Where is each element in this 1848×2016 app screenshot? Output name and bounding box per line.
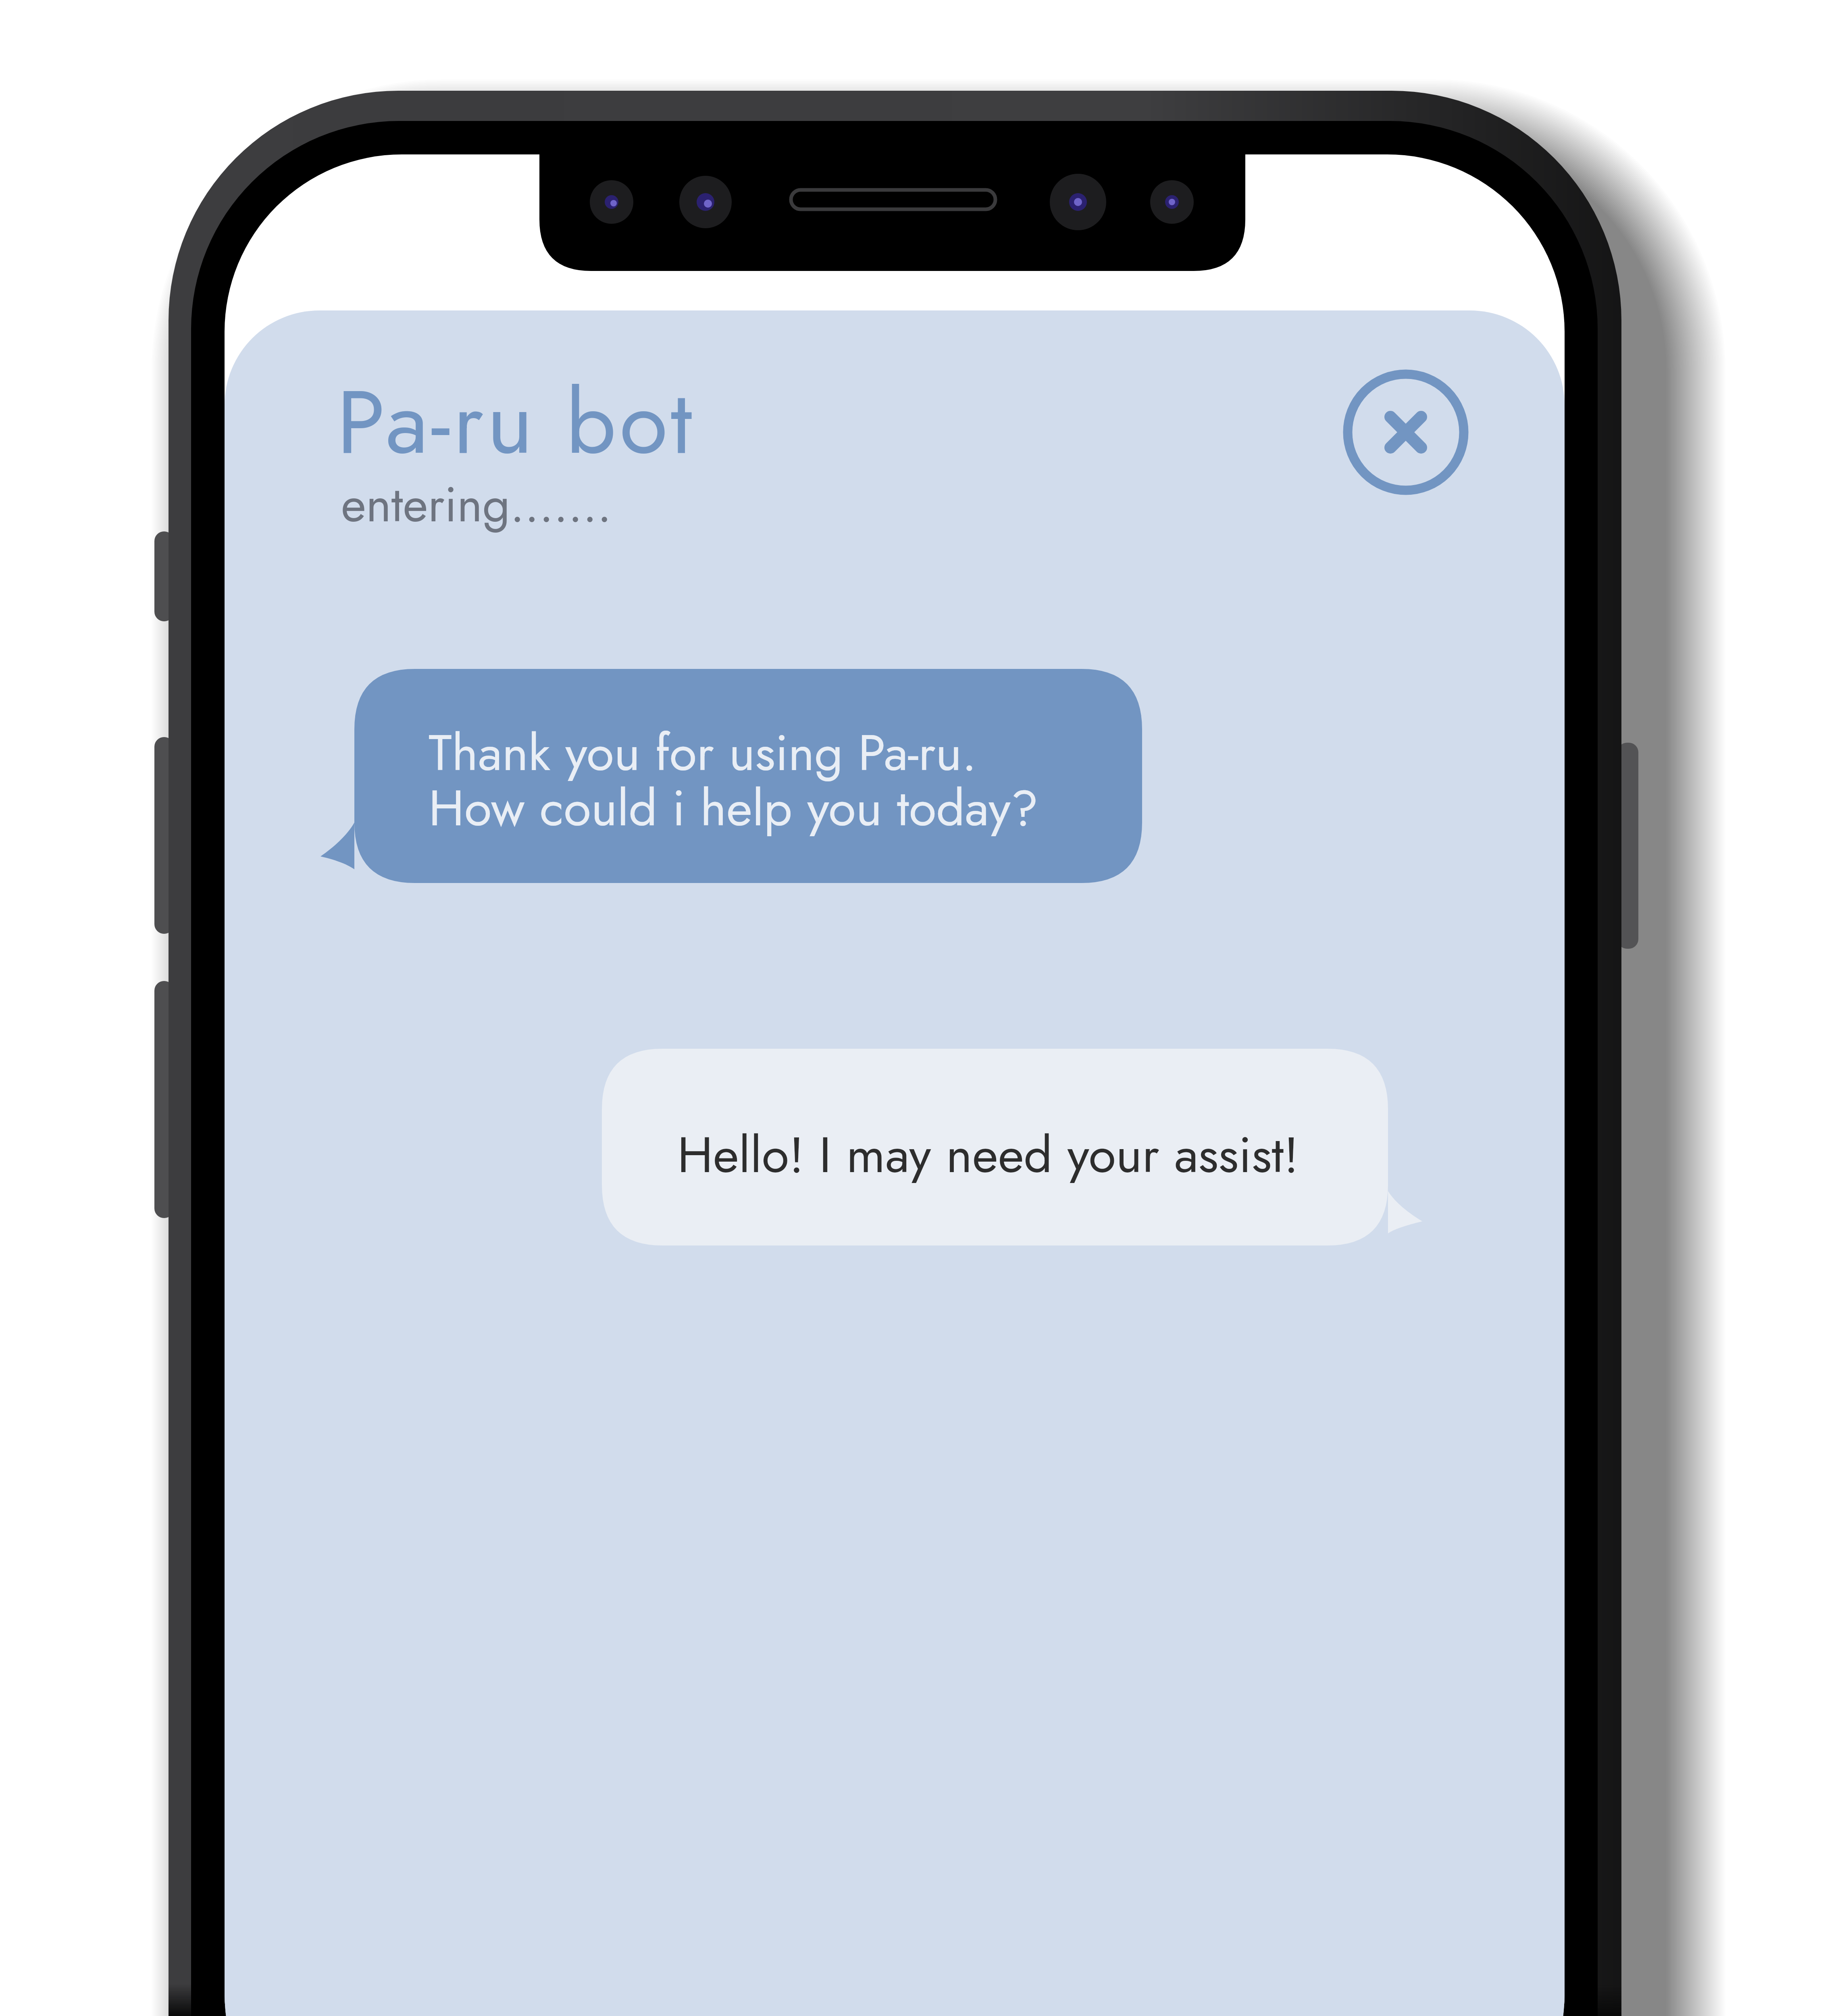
- staticText: entering.......: [341, 470, 612, 539]
- staticText: Hello! I may need your assist!: [677, 1118, 1299, 1191]
- staticText: Pa-ru bot: [337, 358, 695, 486]
- button[interactable]: Close chat: [1337, 364, 1474, 501]
- staticText: Thank you for using Pa-ru. How could i h…: [429, 716, 1038, 844]
